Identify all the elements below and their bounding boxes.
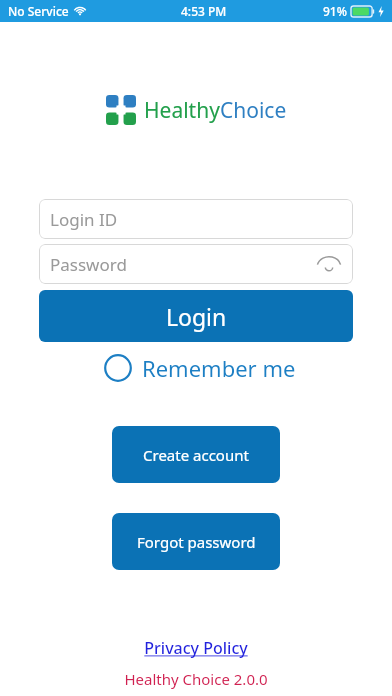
staticText: Healthy: [144, 96, 220, 125]
button[interactable]: Create account: [112, 426, 280, 483]
staticText: Create account: [143, 445, 249, 465]
staticText: No Service: [8, 3, 69, 19]
staticText: Remember me: [142, 353, 296, 383]
staticText: Choice: [220, 96, 287, 125]
button[interactable]: Login ID: [39, 199, 353, 239]
button[interactable]: Privacy Policy: [144, 637, 248, 659]
button[interactable]: Show password: [313, 248, 345, 280]
staticText: Login ID: [50, 208, 118, 231]
staticText: Password: [50, 253, 127, 276]
staticText: 4:53 PM: [181, 3, 227, 19]
button[interactable]: Login: [39, 290, 353, 342]
staticText: Privacy Policy: [144, 637, 248, 659]
staticText: Forgot password: [137, 532, 256, 552]
staticText: 91%: [323, 3, 347, 19]
button[interactable]: Password: [39, 244, 353, 284]
staticText: Healthy Choice 2.0.0: [124, 669, 268, 689]
button[interactable]: Forgot password: [112, 513, 280, 570]
button[interactable]: Remember me: [104, 352, 296, 384]
staticText: Login: [166, 301, 227, 332]
